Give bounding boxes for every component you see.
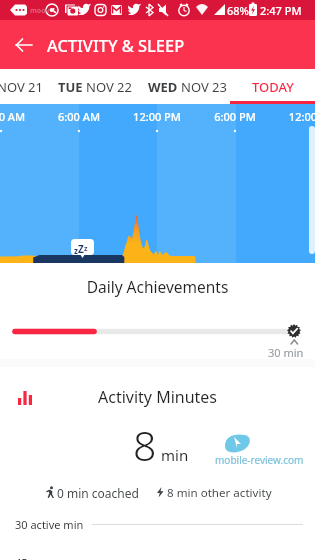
staticText: 12:00 AM xyxy=(263,109,315,124)
button[interactable]: WED xyxy=(148,69,227,104)
staticText: 8 min other activity xyxy=(167,485,272,501)
staticText: 6:00 PM xyxy=(185,109,285,124)
button[interactable]: Back xyxy=(6,27,42,63)
button[interactable]: TODAY xyxy=(230,69,315,104)
staticText: 8 xyxy=(133,417,157,473)
staticText: Z xyxy=(78,242,84,256)
staticText: z xyxy=(84,244,88,254)
staticText: NOV 21 xyxy=(0,78,43,96)
staticText: 0 min coached xyxy=(57,485,139,501)
staticText: z xyxy=(74,245,78,256)
staticText: WED xyxy=(148,78,181,96)
staticText: 45 xyxy=(15,555,28,560)
staticText: mobile-review.com xyxy=(215,453,304,467)
staticText: NOV 23 xyxy=(181,78,227,96)
button[interactable]: MON xyxy=(0,69,43,104)
staticText: Daily Achievements xyxy=(0,276,315,297)
staticText: TUE xyxy=(58,78,86,96)
button[interactable]: TUE xyxy=(58,69,132,104)
staticText: ACTIVITY & SLEEP xyxy=(47,34,185,56)
staticText: 30 min xyxy=(268,345,304,360)
staticText: 2:47 PM xyxy=(260,3,302,18)
staticText: 12:00 PM xyxy=(107,109,207,124)
staticText: 6:00 AM xyxy=(29,109,129,124)
staticText: 68% xyxy=(227,3,249,18)
staticText: Activity Minutes xyxy=(0,386,315,408)
staticText: TODAY xyxy=(252,78,294,96)
staticText: min xyxy=(161,445,189,465)
staticText: 12:00 AM xyxy=(0,109,51,124)
staticText: moov xyxy=(30,6,50,16)
staticText: NOV 22 xyxy=(86,78,132,96)
staticText: 30 active min xyxy=(15,517,84,532)
